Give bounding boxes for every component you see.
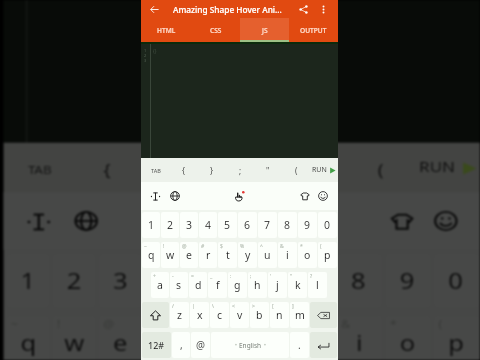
button[interactable]: :: [228, 272, 247, 298]
staticText: $: [220, 243, 223, 250]
button[interactable]: \: [210, 302, 229, 328]
button[interactable]: @: [98, 316, 142, 360]
button[interactable]: ,: [172, 332, 190, 358]
button[interactable]: Share: [297, 3, 310, 16]
button[interactable]: RUN: [414, 143, 480, 192]
button[interactable]: 4: [199, 212, 217, 238]
button[interactable]: Backspace: [310, 302, 337, 328]
button[interactable]: }: [198, 158, 226, 182]
button[interactable]: {: [74, 143, 142, 192]
button[interactable]: Handwriting: [231, 188, 247, 204]
button[interactable]: 9: [298, 212, 317, 238]
button[interactable]: 0: [434, 254, 480, 307]
button[interactable]: Handwriting: [222, 204, 261, 237]
button[interactable]: ": [278, 143, 346, 192]
button[interactable]: OUTPUT: [289, 18, 338, 42]
button[interactable]: >: [250, 302, 269, 328]
button[interactable]: Themes: [297, 188, 313, 204]
button[interactable]: ;: [210, 143, 278, 192]
button[interactable]: ^: [258, 242, 277, 268]
button[interactable]: (: [282, 158, 310, 182]
button[interactable]: Themes: [383, 204, 422, 237]
button[interactable]: 8: [278, 212, 297, 238]
button[interactable]: 3: [180, 212, 198, 238]
button[interactable]: TAB: [4, 143, 74, 192]
button[interactable]: Language: [167, 188, 183, 204]
button[interactable]: CSS: [191, 18, 240, 42]
button[interactable]: (: [434, 316, 480, 360]
button[interactable]: 7: [288, 254, 334, 307]
button[interactable]: .: [290, 332, 309, 358]
button[interactable]: 1: [142, 212, 160, 238]
button[interactable]: -: [170, 272, 188, 298]
button[interactable]: 0: [318, 212, 337, 238]
button[interactable]: (: [346, 143, 414, 192]
button[interactable]: •: [211, 332, 289, 358]
button[interactable]: Text cursor: [18, 204, 57, 237]
staticText: -: [172, 273, 174, 280]
button[interactable]: Language: [67, 204, 106, 237]
button[interactable]: ]: [290, 302, 309, 328]
staticText: 1: [148, 218, 155, 232]
button[interactable]: ?: [308, 272, 327, 298]
button[interactable]: Emoji: [315, 188, 331, 204]
button[interactable]: 12#: [142, 332, 171, 358]
button[interactable]: *: [385, 316, 431, 360]
button[interactable]: $: [191, 316, 237, 360]
button[interactable]: 5: [218, 212, 237, 238]
button[interactable]: ": [254, 158, 282, 182]
button[interactable]: 6: [239, 254, 285, 307]
button[interactable]: !: [161, 242, 179, 268]
button[interactable]: Back: [148, 3, 161, 16]
button[interactable]: #: [144, 316, 188, 360]
button[interactable]: {: [170, 158, 198, 182]
button[interactable]: %: [238, 242, 257, 268]
button[interactable]: Text cursor: [147, 188, 163, 204]
staticText: j: [276, 278, 279, 292]
button[interactable]: $: [218, 242, 237, 268]
button[interactable]: ~: [6, 316, 50, 360]
button[interactable]: 2: [161, 212, 179, 238]
button[interactable]: *: [298, 242, 317, 268]
button[interactable]: 4: [144, 254, 188, 307]
button[interactable]: &: [278, 242, 297, 268]
button[interactable]: [: [270, 302, 289, 328]
button[interactable]: 6: [238, 212, 257, 238]
button[interactable]: ": [288, 272, 307, 298]
button[interactable]: 8: [336, 254, 383, 307]
button[interactable]: <: [230, 302, 249, 328]
button[interactable]: ~: [142, 242, 160, 268]
button[interactable]: 2: [52, 254, 96, 307]
button[interactable]: ;: [226, 158, 254, 182]
button[interactable]: @: [191, 332, 210, 358]
button[interactable]: |: [190, 302, 209, 328]
button[interactable]: 3: [98, 254, 142, 307]
button[interactable]: 9: [385, 254, 431, 307]
button[interactable]: #: [199, 242, 217, 268]
button[interactable]: /: [170, 302, 189, 328]
button[interactable]: Enter: [310, 332, 337, 358]
button[interactable]: _: [208, 272, 227, 298]
button[interactable]: Emoji: [426, 204, 465, 237]
staticText: t: [210, 328, 220, 357]
button[interactable]: More options: [317, 3, 330, 16]
button[interactable]: ;: [248, 272, 267, 298]
button[interactable]: =: [189, 272, 207, 298]
button[interactable]: JS: [240, 18, 289, 42]
button[interactable]: ': [268, 272, 287, 298]
button[interactable]: }: [142, 143, 210, 192]
button[interactable]: (: [318, 242, 337, 268]
button[interactable]: HTML: [141, 18, 191, 42]
button[interactable]: Shift: [142, 302, 169, 328]
button[interactable]: TAB: [141, 158, 170, 182]
button[interactable]: !: [52, 316, 96, 360]
button[interactable]: RUN: [310, 158, 338, 182]
button[interactable]: +: [151, 272, 169, 298]
button[interactable]: %: [239, 316, 285, 360]
button[interactable]: ^: [288, 316, 334, 360]
button[interactable]: 7: [258, 212, 277, 238]
button[interactable]: @: [180, 242, 198, 268]
button[interactable]: 1: [6, 254, 50, 307]
button[interactable]: &: [336, 316, 383, 360]
button[interactable]: 5: [191, 254, 237, 307]
